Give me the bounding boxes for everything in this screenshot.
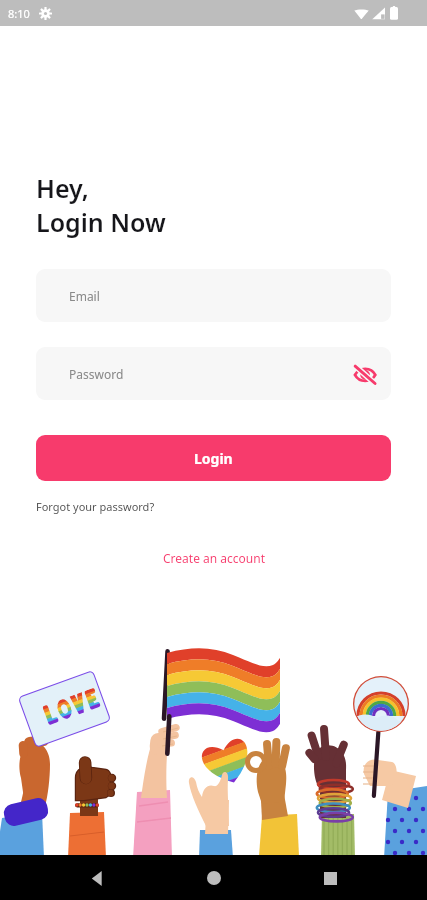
staticText: Email [69, 288, 100, 304]
button[interactable]: Recents [310, 858, 350, 898]
staticText: Password [69, 366, 124, 382]
button[interactable]: Toggle password visibility [350, 359, 380, 389]
button[interactable]: Back [77, 858, 117, 898]
staticText: Hey, Login Now [36, 171, 166, 239]
staticText: Login [194, 449, 233, 468]
button[interactable]: Login [36, 435, 391, 481]
button[interactable]: Email [36, 269, 391, 322]
button[interactable]: Password [36, 347, 391, 400]
button[interactable]: Home [194, 858, 234, 898]
button[interactable]: Forgot your password? [36, 499, 155, 514]
staticText: 8:10 [8, 6, 30, 21]
button[interactable]: Create an account [163, 550, 265, 566]
